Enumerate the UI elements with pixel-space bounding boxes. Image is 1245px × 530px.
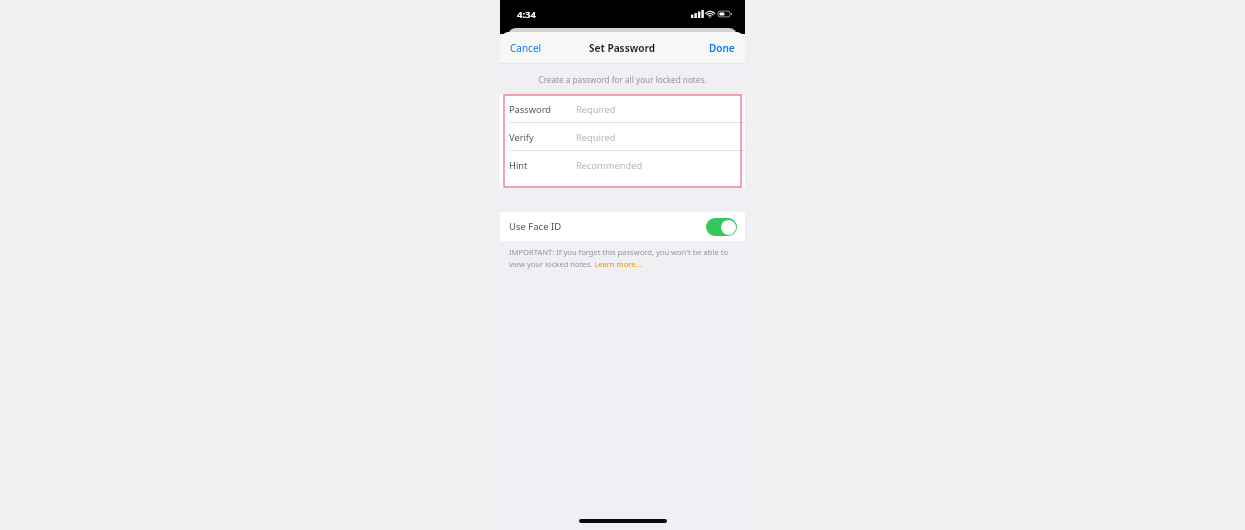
button[interactable]: Verify xyxy=(500,123,745,151)
button[interactable]: Cancel xyxy=(500,35,552,61)
button[interactable]: Hint xyxy=(500,151,745,180)
button[interactable]: Use Face ID xyxy=(500,212,745,241)
staticText: Done xyxy=(709,41,735,55)
staticText: Set Password xyxy=(589,41,656,55)
button[interactable]: Use Face ID toggle, on xyxy=(706,218,737,236)
staticText: Required xyxy=(576,131,616,144)
button[interactable]: Password xyxy=(500,95,745,123)
staticText: Use Face ID xyxy=(509,220,562,233)
button[interactable]: Done xyxy=(699,35,745,61)
staticText: Cancel xyxy=(510,41,542,55)
staticText: Hint xyxy=(509,159,528,172)
staticText: Create a password for all your locked no… xyxy=(500,74,745,85)
staticText: Recommended xyxy=(576,159,643,172)
staticText: Required xyxy=(576,103,616,116)
staticText: 4:34 xyxy=(517,8,536,21)
staticText: Verify xyxy=(509,131,534,144)
staticText: IMPORTANT: If you forget this password, … xyxy=(509,247,732,269)
staticText: Password xyxy=(509,103,552,116)
